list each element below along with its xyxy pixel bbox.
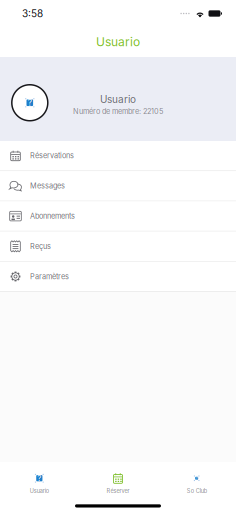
staticText: Reçus <box>30 242 51 251</box>
staticText: Usuario <box>30 487 49 494</box>
staticText: Usuario <box>96 35 140 49</box>
staticText: 3:58 <box>22 7 43 20</box>
staticText: Numéro de membre: 22105 <box>73 107 163 116</box>
button[interactable]: ? <box>157 462 236 495</box>
button[interactable]: Reçus <box>0 232 236 262</box>
staticText: So Club <box>187 487 207 494</box>
button[interactable]: Réserver <box>79 462 157 495</box>
staticText: Paramètres <box>30 272 69 281</box>
staticText: Abonnements <box>30 212 75 221</box>
button[interactable]: Abonnements <box>0 201 236 232</box>
staticText: ? <box>37 473 41 483</box>
staticText: Réserver <box>106 487 129 494</box>
button[interactable]: ? <box>0 462 79 495</box>
staticText: ? <box>28 98 32 108</box>
staticText: ? <box>196 476 198 481</box>
button[interactable]: Paramètres <box>0 262 236 292</box>
staticText: Usuario <box>100 93 136 105</box>
staticText: Messages <box>30 181 65 190</box>
button[interactable]: Messages <box>0 171 236 201</box>
button[interactable]: Réservations <box>0 141 236 171</box>
staticText: Réservations <box>30 151 74 160</box>
